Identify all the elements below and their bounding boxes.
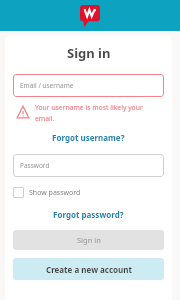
button[interactable]: Create a new account: [13, 258, 164, 280]
button[interactable]: Forgot password?: [49, 207, 128, 222]
staticText: Create a new account: [46, 264, 132, 275]
other: Error: [16, 105, 30, 119]
staticText: Show password: [29, 188, 81, 198]
staticText: Password: [20, 161, 50, 170]
staticText: email.: [35, 114, 55, 123]
staticText: Forgot username?: [52, 132, 125, 143]
button[interactable]: Show password: [13, 186, 81, 199]
button[interactable]: Email / username: [13, 74, 164, 97]
button[interactable]: Password: [13, 154, 164, 177]
staticText: Sign in: [67, 44, 111, 62]
button[interactable]: Sign in: [13, 230, 164, 250]
staticText: Sign in: [77, 235, 101, 245]
other: Walgreens logo: [80, 5, 100, 27]
staticText: Email / username: [20, 81, 74, 90]
staticText: Forgot password?: [53, 209, 124, 220]
button[interactable]: Forgot username?: [48, 130, 129, 145]
staticText: Your username is most likely your: [35, 103, 143, 112]
